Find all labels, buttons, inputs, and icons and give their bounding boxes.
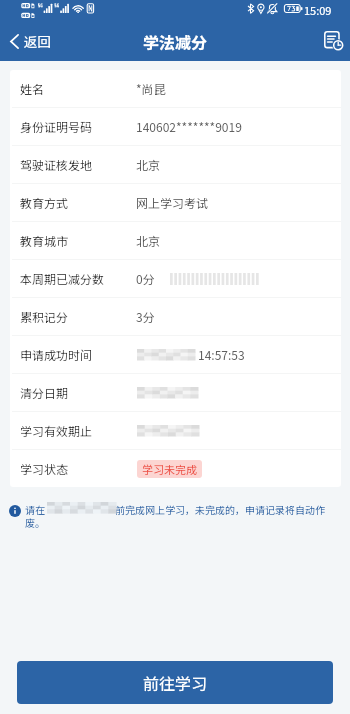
button[interactable]: 学习有效期止	[10, 412, 341, 449]
staticText: 学习状态	[20, 460, 69, 477]
staticText: 身份证明号码	[20, 118, 93, 135]
button[interactable]: 清分日期	[10, 374, 341, 411]
staticText: 驾驶证核发地	[20, 156, 93, 173]
staticText: 本周期已减分数	[20, 270, 105, 287]
staticText: 前往学习	[143, 671, 208, 694]
staticText: *尚昆	[136, 80, 166, 97]
button[interactable]: 前往学习	[17, 661, 333, 704]
staticText: 北京	[136, 232, 161, 249]
button[interactable]: 累积记分	[10, 298, 341, 335]
staticText: 累积记分	[20, 308, 69, 325]
button[interactable]: 本周期已减分数	[10, 260, 341, 297]
button[interactable]: 学习记录	[316, 26, 350, 58]
button[interactable]: 返回	[0, 24, 63, 60]
staticText: 申请成功时间	[20, 346, 93, 363]
button[interactable]: 学习状态	[10, 450, 341, 487]
staticText: 请在 前完成网上学习，未完成的，申请记录将自动作废。	[25, 502, 330, 530]
staticText: 北京	[136, 156, 161, 173]
staticText: 返回	[24, 31, 51, 51]
staticText: 姓名	[20, 80, 45, 97]
staticText: 3分	[136, 308, 155, 325]
button[interactable]: 教育方式	[10, 184, 341, 221]
staticText: 清分日期	[20, 384, 69, 401]
staticText: 学习未完成	[142, 461, 197, 477]
button[interactable]: 驾驶证核发地	[10, 146, 341, 183]
staticText: 教育城市	[20, 232, 69, 249]
staticText: 学习有效期止	[20, 422, 93, 439]
staticText: 140602*******9019	[136, 118, 242, 135]
button[interactable]: 姓名	[10, 70, 341, 107]
staticText: 学法减分	[143, 30, 208, 53]
button[interactable]: 身份证明号码	[10, 108, 341, 145]
staticText: 网上学习考试	[136, 194, 209, 211]
staticText: 0分	[136, 270, 155, 287]
staticText: 14:57:53	[198, 346, 245, 363]
button[interactable]: 教育城市	[10, 222, 341, 259]
button[interactable]: 申请成功时间	[10, 336, 341, 373]
staticText: 15:09	[304, 2, 332, 18]
staticText: 教育方式	[20, 194, 69, 211]
